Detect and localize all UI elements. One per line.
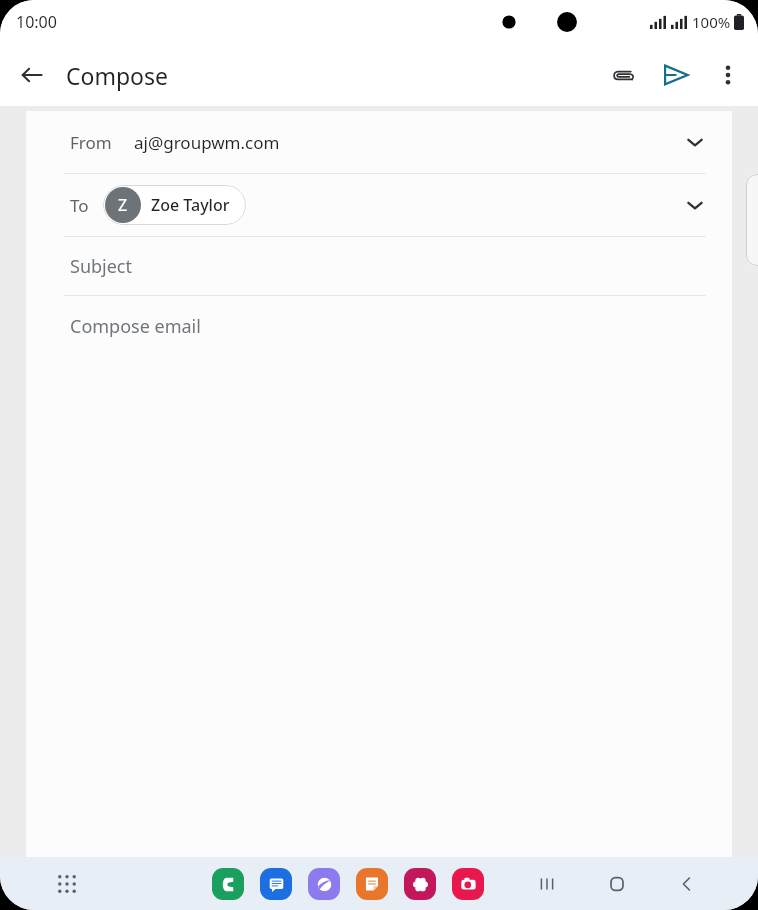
- staticText: Z: [118, 194, 128, 216]
- staticText: 10:00: [16, 11, 57, 33]
- button[interactable]: Apps: [44, 861, 90, 907]
- button[interactable]: Messages: [260, 868, 292, 900]
- button[interactable]: From: [26, 111, 732, 173]
- staticText: 100%: [692, 12, 731, 32]
- button[interactable]: Recents: [526, 863, 568, 905]
- button[interactable]: Notes: [356, 868, 388, 900]
- button[interactable]: Edge panel: [746, 174, 758, 266]
- staticText: To: [70, 194, 89, 217]
- button[interactable]: Compose email: [26, 296, 732, 857]
- button[interactable]: Subject: [26, 237, 732, 295]
- button[interactable]: Attach file: [598, 51, 646, 99]
- button[interactable]: Z: [103, 185, 246, 225]
- button[interactable]: Back: [666, 863, 708, 905]
- button[interactable]: Phone: [212, 868, 244, 900]
- button[interactable]: Gallery: [404, 868, 436, 900]
- button[interactable]: Back: [8, 51, 56, 99]
- staticText: aj@groupwm.com: [134, 131, 280, 154]
- staticText: Compose email: [70, 314, 201, 339]
- staticText: Zoe Taylor: [151, 194, 230, 216]
- button[interactable]: Internet: [308, 868, 340, 900]
- staticText: From: [70, 131, 112, 154]
- staticText: Compose: [66, 60, 169, 91]
- button[interactable]: More options: [704, 51, 752, 99]
- button[interactable]: Home: [596, 863, 638, 905]
- button[interactable]: To: [26, 174, 732, 236]
- button[interactable]: Camera: [452, 868, 484, 900]
- staticText: Subject: [70, 254, 133, 279]
- button[interactable]: Send: [652, 51, 700, 99]
